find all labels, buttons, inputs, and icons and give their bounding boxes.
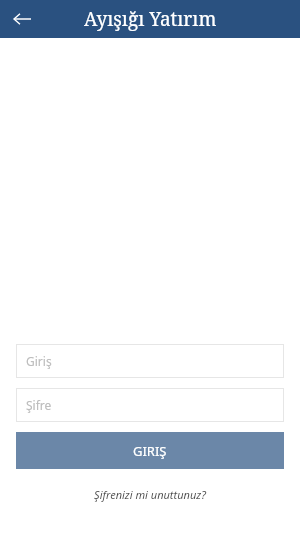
staticText: GIRIŞ	[133, 442, 167, 460]
staticText: Şifre	[26, 397, 52, 413]
button[interactable]: GIRIŞ	[16, 432, 284, 469]
staticText: Ayışığı Yatırım	[84, 6, 217, 32]
button[interactable]: Giriş	[16, 344, 284, 378]
button[interactable]: Şifre	[16, 388, 284, 422]
button[interactable]: Back	[6, 3, 38, 35]
button[interactable]: Şifrenizi mi unuttunuz?	[0, 487, 300, 502]
staticText: Giriş	[26, 353, 52, 369]
staticText: Şifrenizi mi unuttunuz?	[94, 487, 206, 502]
